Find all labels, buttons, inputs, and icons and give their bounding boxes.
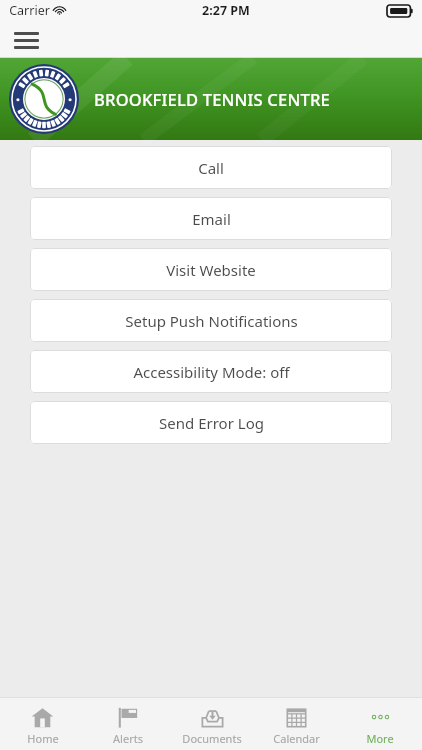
staticText: Carrier [9,2,50,19]
button[interactable]: More [338,702,422,746]
staticText: 2:27 PM [202,2,250,19]
button[interactable]: Email [30,197,392,240]
staticText: Calendar [273,731,320,746]
button[interactable]: Visit Website [30,248,392,291]
staticText: Email [192,209,231,229]
staticText: Call [198,158,224,178]
staticText: More [366,731,394,746]
staticText: Home [27,731,59,746]
staticText: Alerts [113,731,143,746]
button[interactable]: Home [0,702,85,746]
button[interactable]: Alerts [85,702,170,746]
button[interactable]: Call [30,146,392,189]
button[interactable]: Accessibility Mode: off [30,350,392,393]
staticText: Setup Push Notifications [125,311,298,331]
button[interactable]: Send Error Log [30,401,392,444]
button[interactable]: Calendar [254,702,338,746]
button[interactable]: Menu [9,23,43,57]
staticText: BROOKFIELD TENNIS CENTRE [94,88,330,110]
button[interactable]: Documents [170,702,254,746]
staticText: Visit Website [166,260,256,280]
button[interactable]: Setup Push Notifications [30,299,392,342]
staticText: Send Error Log [159,413,264,433]
staticText: Accessibility Mode: off [133,362,290,382]
staticText: Documents [182,731,242,746]
